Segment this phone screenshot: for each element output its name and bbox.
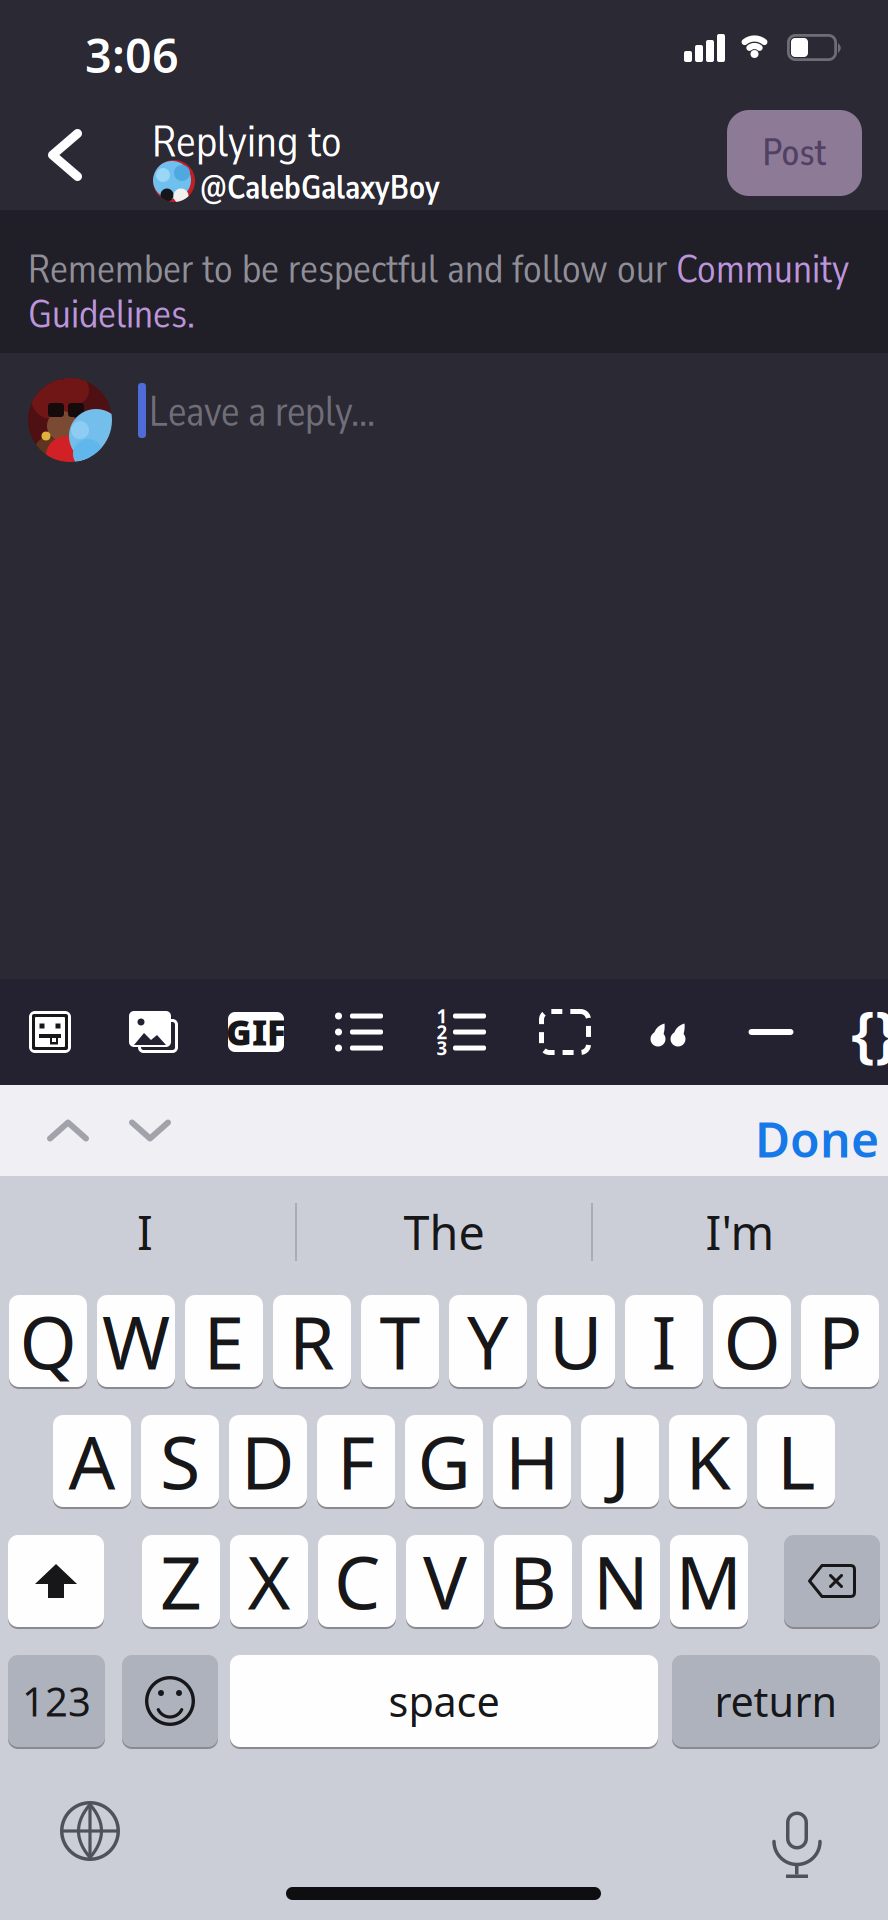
button[interactable]: N — [582, 1534, 660, 1628]
staticText: Y — [467, 1292, 509, 1390]
button[interactable] — [122, 1654, 218, 1748]
button[interactable]: I'm — [595, 1176, 885, 1288]
staticText: Post — [762, 127, 826, 178]
staticText: The — [403, 1201, 484, 1263]
button[interactable]: B — [494, 1534, 572, 1628]
staticText: I'm — [705, 1201, 774, 1263]
button[interactable]: W — [97, 1294, 175, 1388]
staticText: Replying to — [152, 112, 342, 172]
button[interactable]: {} — [845, 979, 888, 1085]
button[interactable] — [329, 979, 389, 1085]
staticText: 2 — [436, 1020, 447, 1044]
button[interactable]: A — [53, 1414, 131, 1508]
button[interactable]: space — [230, 1654, 658, 1748]
button[interactable] — [38, 1085, 98, 1176]
button[interactable]: D — [229, 1414, 307, 1508]
button[interactable]: R — [273, 1294, 351, 1388]
button[interactable]: I — [625, 1294, 703, 1388]
staticText: W — [102, 1292, 170, 1390]
staticText: Q — [19, 1292, 76, 1390]
staticText: J — [610, 1412, 630, 1510]
button[interactable] — [741, 979, 801, 1085]
staticText: V — [423, 1532, 467, 1630]
button[interactable]: V — [406, 1534, 484, 1628]
button[interactable]: O — [713, 1294, 791, 1388]
staticText: {} — [851, 991, 888, 1073]
button[interactable] — [123, 979, 183, 1085]
staticText: 3 — [436, 1036, 447, 1060]
button[interactable]: The — [299, 1176, 589, 1288]
staticText: I — [651, 1292, 676, 1390]
button[interactable]: I — [0, 1176, 290, 1288]
staticText: space — [388, 1674, 499, 1728]
button[interactable]: J — [581, 1414, 659, 1508]
button[interactable] — [535, 979, 595, 1085]
staticText: X — [247, 1532, 290, 1630]
staticText: Leave a reply... — [149, 384, 375, 440]
button[interactable]: F — [317, 1414, 395, 1508]
button[interactable] — [772, 1797, 822, 1864]
staticText: return — [714, 1674, 837, 1728]
button[interactable]: 1 — [432, 979, 492, 1085]
staticText: Done — [755, 1107, 879, 1171]
button[interactable] — [60, 1801, 120, 1861]
button[interactable] — [638, 979, 698, 1085]
staticText: 1 — [436, 1004, 447, 1028]
button[interactable]: Y — [449, 1294, 527, 1388]
button[interactable]: T — [361, 1294, 439, 1388]
staticText: Community — [676, 242, 849, 297]
button[interactable]: 123 — [8, 1654, 105, 1748]
staticText: P — [818, 1292, 862, 1390]
button[interactable]: U — [537, 1294, 615, 1388]
staticText: K — [685, 1412, 730, 1510]
button[interactable]: G — [405, 1414, 483, 1508]
staticText: G — [417, 1412, 470, 1510]
staticText: 3:06 — [85, 24, 179, 86]
button[interactable]: P — [801, 1294, 879, 1388]
staticText: F — [337, 1412, 375, 1510]
staticText: N — [593, 1532, 649, 1630]
staticText: T — [379, 1292, 420, 1390]
staticText: @CalebGalaxyBoy — [200, 165, 440, 210]
staticText: O — [723, 1292, 780, 1390]
button[interactable] — [784, 1534, 880, 1628]
staticText: E — [203, 1292, 244, 1390]
staticText: I — [137, 1201, 153, 1263]
staticText: GIF — [226, 1009, 286, 1055]
button[interactable]: Community — [676, 242, 849, 297]
staticText: D — [241, 1412, 295, 1510]
staticText: U — [549, 1292, 603, 1390]
button[interactable] — [120, 1085, 180, 1176]
button[interactable]: Q — [9, 1294, 87, 1388]
staticText: A — [68, 1412, 115, 1510]
button[interactable]: K — [669, 1414, 747, 1508]
button[interactable]: E — [185, 1294, 263, 1388]
button[interactable]: H — [493, 1414, 571, 1508]
button[interactable]: return — [672, 1654, 880, 1748]
staticText: S — [160, 1412, 200, 1510]
button[interactable]: Done — [755, 1107, 879, 1171]
staticText: L — [777, 1412, 815, 1510]
button[interactable]: M — [670, 1534, 748, 1628]
button[interactable]: GIF — [224, 979, 288, 1085]
button[interactable] — [30, 115, 100, 195]
button[interactable]: L — [757, 1414, 835, 1508]
staticText: Z — [160, 1532, 202, 1630]
button[interactable]: Z — [142, 1534, 220, 1628]
staticText: Guidelines. — [28, 287, 195, 342]
staticText: M — [675, 1532, 742, 1630]
button[interactable]: X — [230, 1534, 308, 1628]
button[interactable]: Post — [727, 110, 862, 196]
staticText: Remember to be respectful and follow our — [28, 242, 676, 297]
staticText: C — [334, 1532, 380, 1630]
button[interactable]: S — [141, 1414, 219, 1508]
staticText: H — [505, 1412, 559, 1510]
button[interactable]: Guidelines. — [28, 287, 195, 342]
staticText: R — [289, 1292, 335, 1390]
button[interactable] — [20, 979, 80, 1085]
button[interactable] — [8, 1534, 104, 1628]
button[interactable]: C — [318, 1534, 396, 1628]
staticText: B — [509, 1532, 557, 1630]
staticText: 123 — [22, 1674, 91, 1727]
